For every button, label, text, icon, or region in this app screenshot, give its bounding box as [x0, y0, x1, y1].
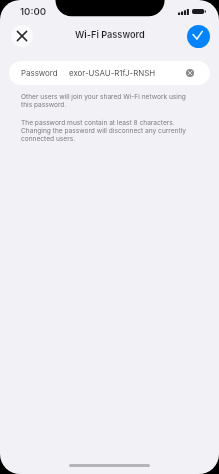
button[interactable]: Done [187, 25, 210, 48]
staticText: Password [21, 68, 58, 78]
staticText: The password must contain at least 8 cha… [21, 119, 189, 143]
button[interactable]: Close [11, 25, 33, 47]
staticText: Wi-Fi Password [75, 29, 145, 40]
button[interactable]: Clear text [186, 69, 194, 77]
staticText: 10:00 [20, 6, 47, 18]
button[interactable]: Password [9, 61, 210, 85]
staticText: Other users will join your shared Wi-Fi … [21, 93, 189, 109]
staticText: exor-USAU-R1fJ-RNSH [69, 68, 156, 78]
